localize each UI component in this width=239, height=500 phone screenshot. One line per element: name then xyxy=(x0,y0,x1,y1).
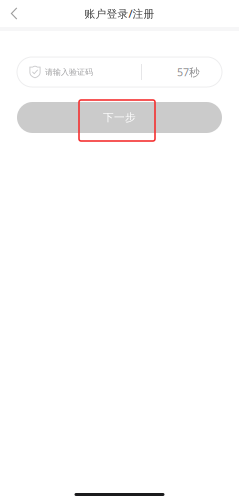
staticText: 下一步 xyxy=(103,111,136,124)
staticText: 账户登录/注册 xyxy=(84,6,154,21)
staticText: 57秒 xyxy=(177,65,200,79)
button[interactable]: Back xyxy=(0,0,28,27)
button[interactable]: 下一步 xyxy=(17,102,222,133)
staticText: 请输入验证码 xyxy=(45,67,93,77)
